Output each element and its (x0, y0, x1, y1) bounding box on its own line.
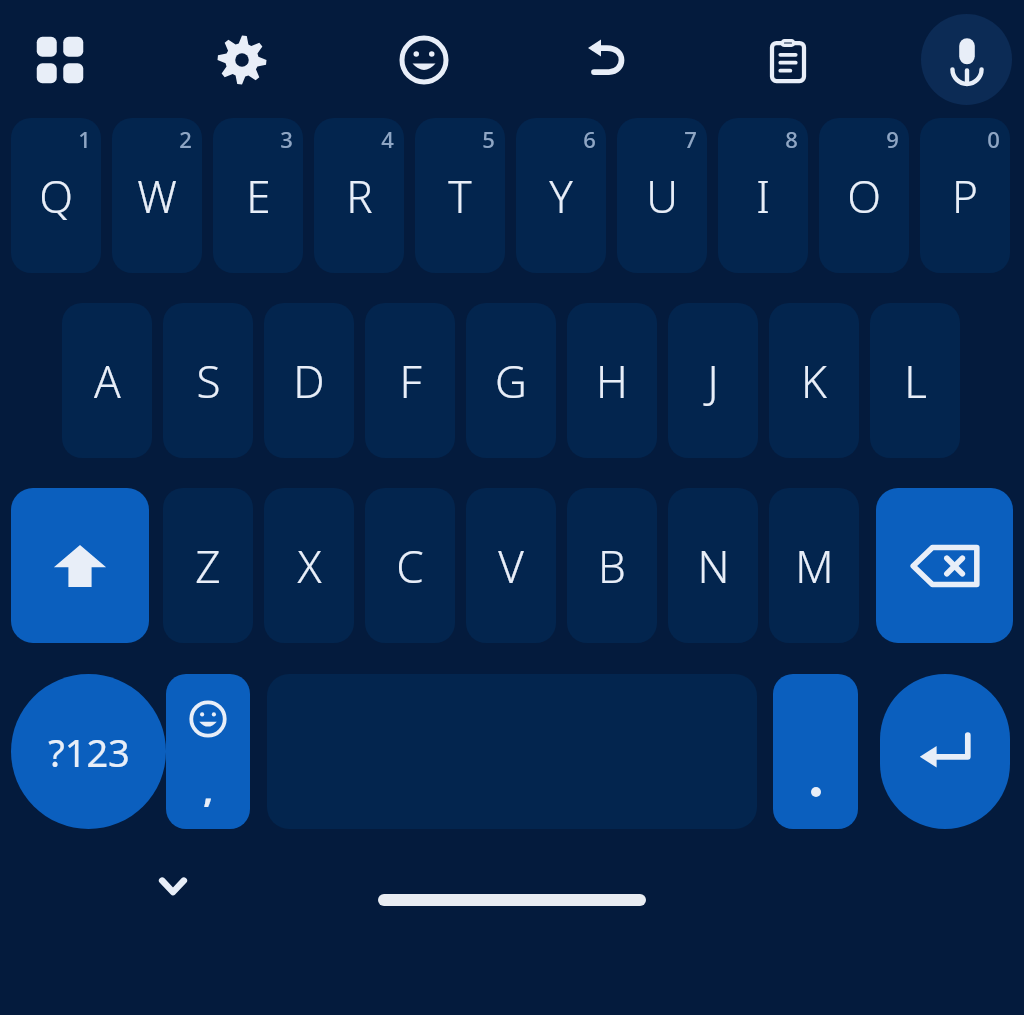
button[interactable]: Shift (11, 488, 149, 643)
staticText: 7 (684, 124, 697, 154)
button[interactable]: M (769, 488, 859, 643)
staticText: 6 (583, 124, 596, 154)
button[interactable]: Undo (560, 14, 651, 105)
button[interactable]: P (920, 118, 1010, 273)
button[interactable]: R (314, 118, 404, 273)
button[interactable]: Emoji (378, 14, 469, 105)
staticText: W (137, 166, 177, 226)
staticText: 5 (482, 124, 495, 154)
staticText: Y (549, 166, 573, 226)
staticText: X (297, 536, 322, 596)
button[interactable]: Voice input (921, 14, 1012, 105)
button[interactable]: Enter (880, 674, 1010, 829)
button[interactable]: E (213, 118, 303, 273)
button[interactable]: C (365, 488, 455, 643)
staticText: F (399, 351, 422, 411)
button[interactable]: Clipboard (742, 14, 833, 105)
staticText: 9 (886, 124, 899, 154)
button[interactable]: B (567, 488, 657, 643)
staticText: H (596, 351, 628, 411)
staticText: 0 (987, 124, 1000, 154)
button[interactable]: ?123 (11, 674, 166, 829)
button[interactable]: S (163, 303, 253, 458)
staticText: , (203, 767, 213, 813)
staticText: ?123 (48, 726, 130, 778)
staticText: 4 (381, 124, 394, 154)
staticText: 3 (280, 124, 293, 154)
button[interactable]: O (819, 118, 909, 273)
button[interactable]: Hide keyboard (143, 856, 203, 916)
staticText: R (346, 166, 373, 226)
staticText: Z (195, 536, 221, 596)
button[interactable]: Y (516, 118, 606, 273)
staticText: Q (39, 166, 73, 226)
button[interactable]: Backspace (876, 488, 1013, 643)
staticText: K (801, 351, 827, 411)
button[interactable]: A (62, 303, 152, 458)
staticText: C (396, 536, 424, 596)
button[interactable]: N (668, 488, 758, 643)
staticText: E (246, 166, 271, 226)
button[interactable]: Q (11, 118, 101, 273)
staticText: U (646, 166, 678, 226)
button[interactable]: Emoji and comma (166, 674, 250, 829)
button[interactable]: D (264, 303, 354, 458)
staticText: I (756, 166, 770, 226)
button[interactable]: Settings (196, 14, 287, 105)
button[interactable]: V (466, 488, 556, 643)
staticText: A (94, 351, 121, 411)
staticText: P (952, 166, 978, 226)
staticText: D (293, 351, 325, 411)
button[interactable]: F (365, 303, 455, 458)
staticText: 2 (179, 124, 192, 154)
staticText: O (847, 166, 881, 226)
staticText: S (196, 351, 221, 411)
button[interactable]: Z (163, 488, 253, 643)
button[interactable]: L (870, 303, 960, 458)
button[interactable]: X (264, 488, 354, 643)
button[interactable]: W (112, 118, 202, 273)
staticText: N (697, 536, 730, 596)
button[interactable]: Period (773, 674, 858, 829)
button[interactable]: T (415, 118, 505, 273)
button[interactable]: G (466, 303, 556, 458)
button[interactable]: Switch keyboard (14, 14, 105, 105)
staticText: B (598, 536, 626, 596)
staticText: L (904, 351, 927, 411)
button[interactable]: I (718, 118, 808, 273)
staticText: 8 (785, 124, 798, 154)
staticText: V (498, 536, 524, 596)
staticText: 1 (78, 124, 91, 154)
button[interactable]: U (617, 118, 707, 273)
staticText: G (495, 351, 527, 411)
staticText: M (795, 536, 834, 596)
staticText: T (448, 166, 472, 226)
staticText: J (707, 351, 719, 411)
button[interactable]: K (769, 303, 859, 458)
button[interactable]: H (567, 303, 657, 458)
button[interactable]: J (668, 303, 758, 458)
